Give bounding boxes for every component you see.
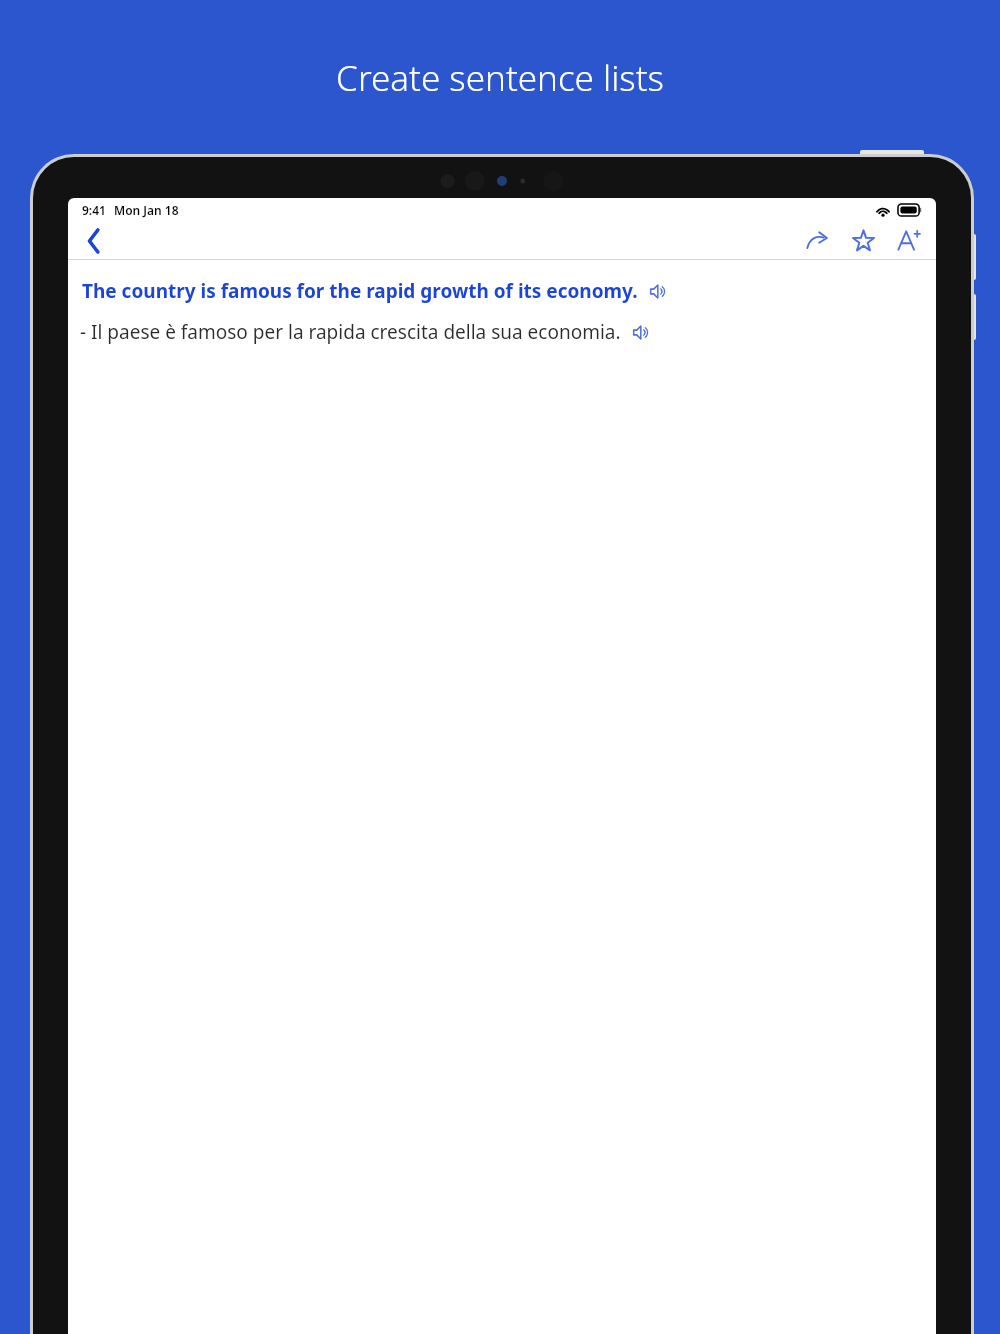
button[interactable]: - Il paese è famoso per la rapida cresci… bbox=[68, 317, 936, 347]
button[interactable]: The country is famous for the rapid grow… bbox=[68, 276, 936, 306]
button[interactable]: Share bbox=[796, 222, 838, 259]
staticText: Create sentence lists bbox=[336, 54, 664, 102]
staticText: The country is famous for the rapid grow… bbox=[82, 278, 638, 304]
staticText: - Il paese è famoso per la rapida cresci… bbox=[80, 319, 621, 345]
button[interactable]: Favorite bbox=[842, 222, 884, 259]
button[interactable]: Back bbox=[74, 222, 114, 259]
button[interactable]: Play Italian sentence bbox=[630, 321, 652, 343]
button[interactable]: Play English sentence bbox=[647, 280, 669, 302]
button[interactable]: Text size bbox=[888, 222, 928, 259]
staticText: 9:41 bbox=[82, 202, 106, 218]
staticText: Mon Jan 18 bbox=[114, 202, 179, 218]
